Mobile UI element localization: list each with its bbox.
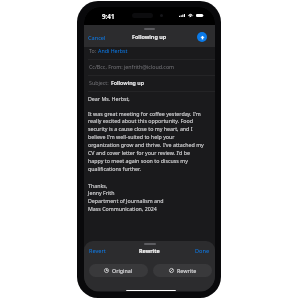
button[interactable]: Cancel — [88, 34, 106, 42]
staticText: Cc/Bcc, From: jenfrith@icloud.com — [89, 63, 175, 70]
staticText: Following up — [111, 79, 144, 86]
staticText: Thanks, Jenny Frith Department of Journa… — [88, 182, 164, 213]
button[interactable]: Rewrite — [153, 264, 212, 277]
staticText: 9:41 — [102, 12, 115, 21]
staticText: Andi Herbst — [98, 47, 128, 54]
button[interactable]: Done — [195, 247, 210, 255]
staticText: Rewrite — [177, 267, 197, 274]
button[interactable]: Original — [89, 264, 148, 277]
button[interactable]: To: — [84, 46, 215, 54]
staticText: Dear Ms. Herbst, — [88, 95, 130, 102]
button[interactable]: Revert — [89, 247, 106, 255]
staticText: Original — [112, 267, 133, 274]
staticText: Rewrite — [139, 247, 160, 254]
staticText: It was great meeting for coffee yesterda… — [88, 110, 206, 173]
staticText: Subject: — [89, 79, 111, 86]
button[interactable]: Send — [197, 32, 207, 42]
staticText: To: — [89, 47, 98, 54]
staticText: Following up — [132, 33, 167, 40]
button[interactable]: Cc/Bcc, From: jenfrith@icloud.com — [84, 62, 215, 70]
button[interactable]: Subject: — [84, 78, 215, 86]
